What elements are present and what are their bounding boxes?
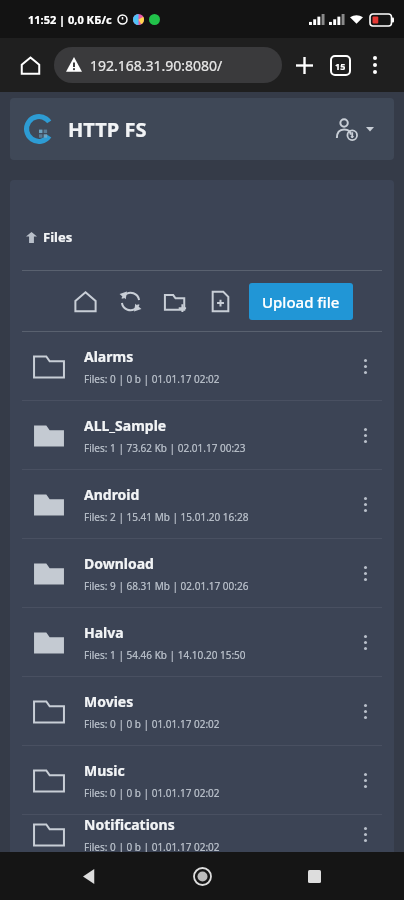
button[interactable]: Home: [180, 854, 224, 898]
staticText: Android: [84, 485, 140, 504]
button[interactable]: More options for Halva: [348, 625, 382, 659]
button[interactable]: New tab: [286, 47, 322, 83]
staticText: Halva: [84, 623, 124, 642]
button[interactable]: Recent apps: [292, 854, 336, 898]
button[interactable]: More options for Notifications: [348, 817, 382, 851]
staticText: ALL_Sample: [84, 416, 167, 435]
button[interactable]: More options: [358, 48, 392, 82]
button[interactable]: Halva: [10, 608, 394, 676]
button[interactable]: Notifications: [10, 815, 394, 852]
staticText: Files: 1 | 73.62 Kb | 02.01.17 00:23: [84, 441, 246, 455]
staticText: 192.168.31.90:8080/: [90, 56, 223, 75]
button[interactable]: New file: [203, 284, 237, 318]
button[interactable]: Refresh: [113, 284, 147, 318]
button[interactable]: More options for Download: [348, 556, 382, 590]
button[interactable]: Tabs: [322, 47, 358, 83]
button[interactable]: New folder: [158, 284, 192, 318]
button[interactable]: Upload file: [249, 283, 353, 320]
staticText: Notifications: [84, 815, 175, 834]
button[interactable]: More options for ALL_Sample: [348, 418, 382, 452]
button[interactable]: Music: [10, 746, 394, 814]
button[interactable]: Movies: [10, 677, 394, 745]
staticText: Upload file: [262, 292, 340, 312]
button[interactable]: ALL_Sample: [10, 401, 394, 469]
button[interactable]: Account: [328, 111, 380, 147]
staticText: Files: 1 | 54.46 Kb | 14.10.20 15:50: [84, 648, 246, 662]
button[interactable]: Home: [12, 47, 48, 83]
staticText: Alarms: [84, 347, 134, 366]
staticText: Movies: [84, 692, 134, 711]
staticText: Music: [84, 761, 125, 780]
staticText: Files: [43, 228, 73, 246]
staticText: Files: 0 | 0 b | 01.01.17 02:02: [84, 717, 220, 731]
button[interactable]: Alarms: [10, 332, 394, 400]
button[interactable]: More options for Android: [348, 487, 382, 521]
button[interactable]: 192.168.31.90:8080/: [54, 47, 282, 83]
staticText: HTTP FS: [68, 116, 147, 143]
button[interactable]: Download: [10, 539, 394, 607]
staticText: Files: 0 | 0 b | 01.01.17 02:02: [84, 372, 220, 386]
staticText: 11:52 | 0,0 КБ/c: [28, 12, 112, 27]
staticText: Files: 9 | 68.31 Mb | 02.01.17 00:26: [84, 579, 249, 593]
button[interactable]: More options for Movies: [348, 694, 382, 728]
staticText: Download: [84, 554, 154, 573]
button[interactable]: Android: [10, 470, 394, 538]
button[interactable]: Files: [26, 228, 73, 246]
staticText: Files: 0 | 0 b | 01.01.17 02:02: [84, 840, 220, 852]
button[interactable]: Home: [68, 284, 102, 318]
button[interactable]: More options for Music: [348, 763, 382, 797]
staticText: Files: 2 | 15.41 Mb | 15.01.20 16:28: [84, 510, 249, 524]
button[interactable]: More options for Alarms: [348, 349, 382, 383]
staticText: 15: [335, 60, 346, 72]
staticText: Files: 0 | 0 b | 01.01.17 02:02: [84, 786, 220, 800]
button[interactable]: Back: [68, 854, 112, 898]
